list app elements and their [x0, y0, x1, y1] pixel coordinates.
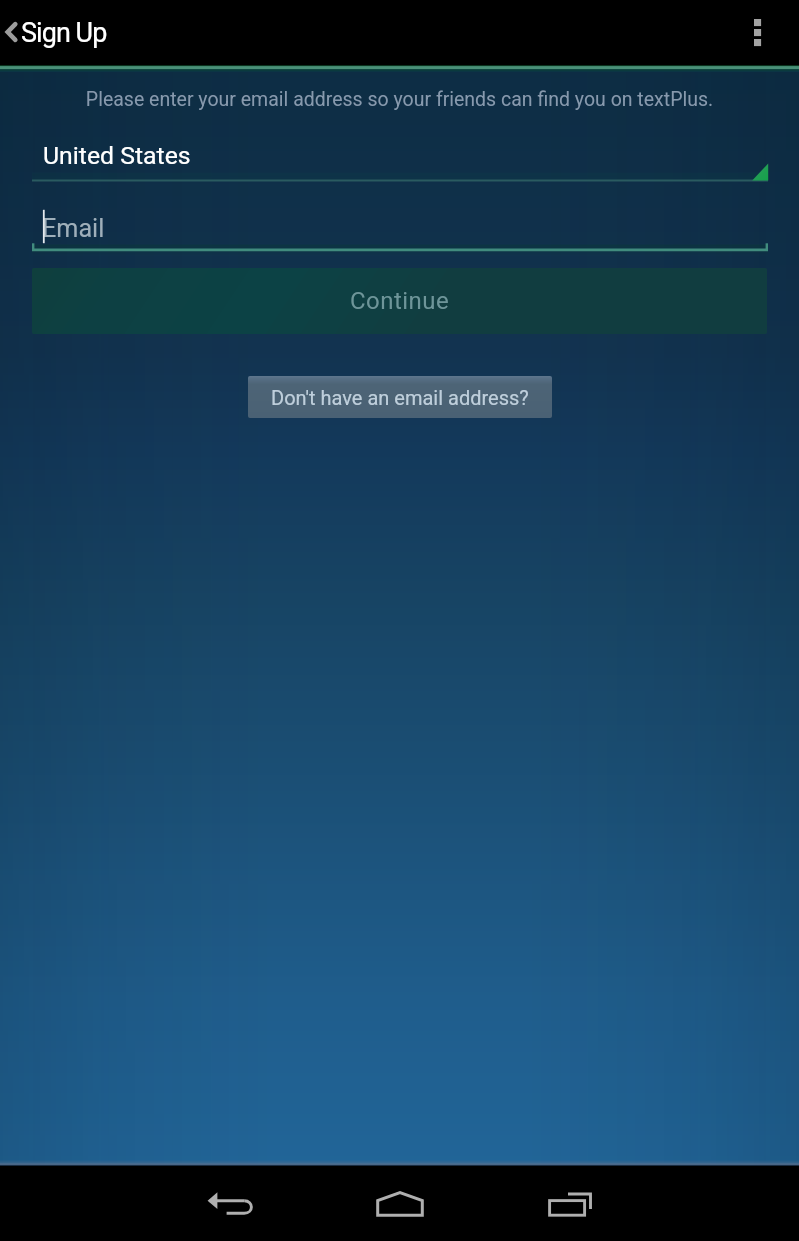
staticText: Continue — [350, 287, 450, 315]
button[interactable]: Don't have an email address? — [248, 376, 552, 418]
staticText: United States — [43, 141, 191, 170]
button[interactable]: More options — [721, 1, 799, 65]
button[interactable]: Home — [367, 1166, 433, 1241]
staticText: Sign Up — [21, 17, 107, 49]
button[interactable]: Recent apps — [537, 1166, 603, 1241]
staticText: Don't have an email address? — [271, 386, 529, 409]
button[interactable]: Back — [197, 1166, 263, 1241]
button[interactable]: Country: United States — [0, 134, 799, 184]
button[interactable]: Navigate up - Sign Up — [0, 1, 121, 65]
staticText: Please enter your email address so your … — [8, 88, 791, 111]
button[interactable]: Continue — [32, 268, 767, 334]
staticText: Email — [42, 214, 105, 244]
button[interactable]: Email address field — [0, 200, 799, 256]
